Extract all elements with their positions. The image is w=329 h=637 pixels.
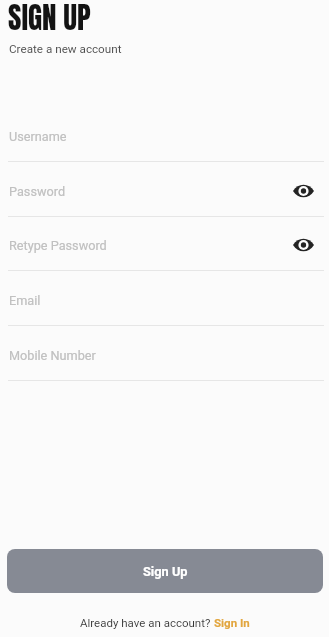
- staticText: Create a new account: [9, 42, 122, 56]
- staticText: Retype Password: [9, 238, 107, 253]
- staticText: Email: [9, 293, 41, 308]
- button[interactable]: Username: [0, 121, 329, 161]
- button[interactable]: Password: [0, 176, 329, 216]
- staticText: Username: [9, 129, 67, 144]
- button[interactable]: Mobile Number: [0, 340, 329, 380]
- button[interactable]: Email: [0, 285, 329, 325]
- button[interactable]: Sign In: [214, 616, 250, 629]
- staticText: Mobile Number: [9, 348, 96, 363]
- staticText: Already have an account?: [80, 616, 214, 629]
- staticText: Sign Up: [143, 564, 188, 579]
- button[interactable]: Sign Up: [7, 549, 323, 593]
- button[interactable]: Toggle password visibility: [288, 176, 318, 206]
- staticText: Password: [9, 184, 66, 199]
- staticText: Sign In: [214, 616, 250, 629]
- button[interactable]: Toggle password visibility: [288, 230, 318, 260]
- button[interactable]: Retype Password: [0, 230, 329, 270]
- staticText: SIGN UP: [8, 0, 91, 40]
